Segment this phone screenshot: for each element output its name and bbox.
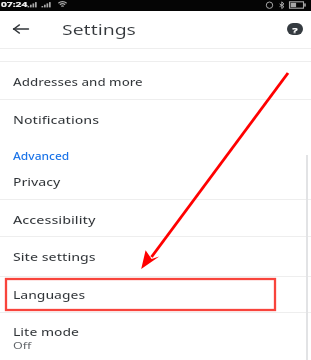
staticText: Off xyxy=(13,339,32,352)
button[interactable]: Site settings xyxy=(0,236,311,276)
staticText: Accessibility xyxy=(13,212,96,227)
button[interactable]: Languages xyxy=(0,276,311,312)
staticText: Languages xyxy=(13,287,85,302)
staticText: 07:24 xyxy=(1,0,28,7)
staticText: ? xyxy=(292,25,298,33)
button[interactable]: Back xyxy=(6,14,36,44)
button[interactable]: Help xyxy=(282,17,308,41)
button[interactable]: Notifications xyxy=(0,99,311,137)
staticText: Advanced xyxy=(13,150,70,163)
button[interactable]: Sync xyxy=(0,44,311,49)
staticText: Settings xyxy=(62,20,136,38)
button[interactable]: Accessibility xyxy=(0,199,311,236)
staticText: Privacy xyxy=(13,174,61,189)
button[interactable]: Addresses and more xyxy=(0,61,311,99)
staticText: Addresses and more xyxy=(13,74,143,89)
staticText: Lite mode xyxy=(13,325,79,339)
button[interactable]: Privacy xyxy=(0,161,311,199)
staticText: Notifications xyxy=(13,112,99,127)
button[interactable]: Lite mode xyxy=(0,312,311,360)
staticText: Site settings xyxy=(13,249,97,264)
